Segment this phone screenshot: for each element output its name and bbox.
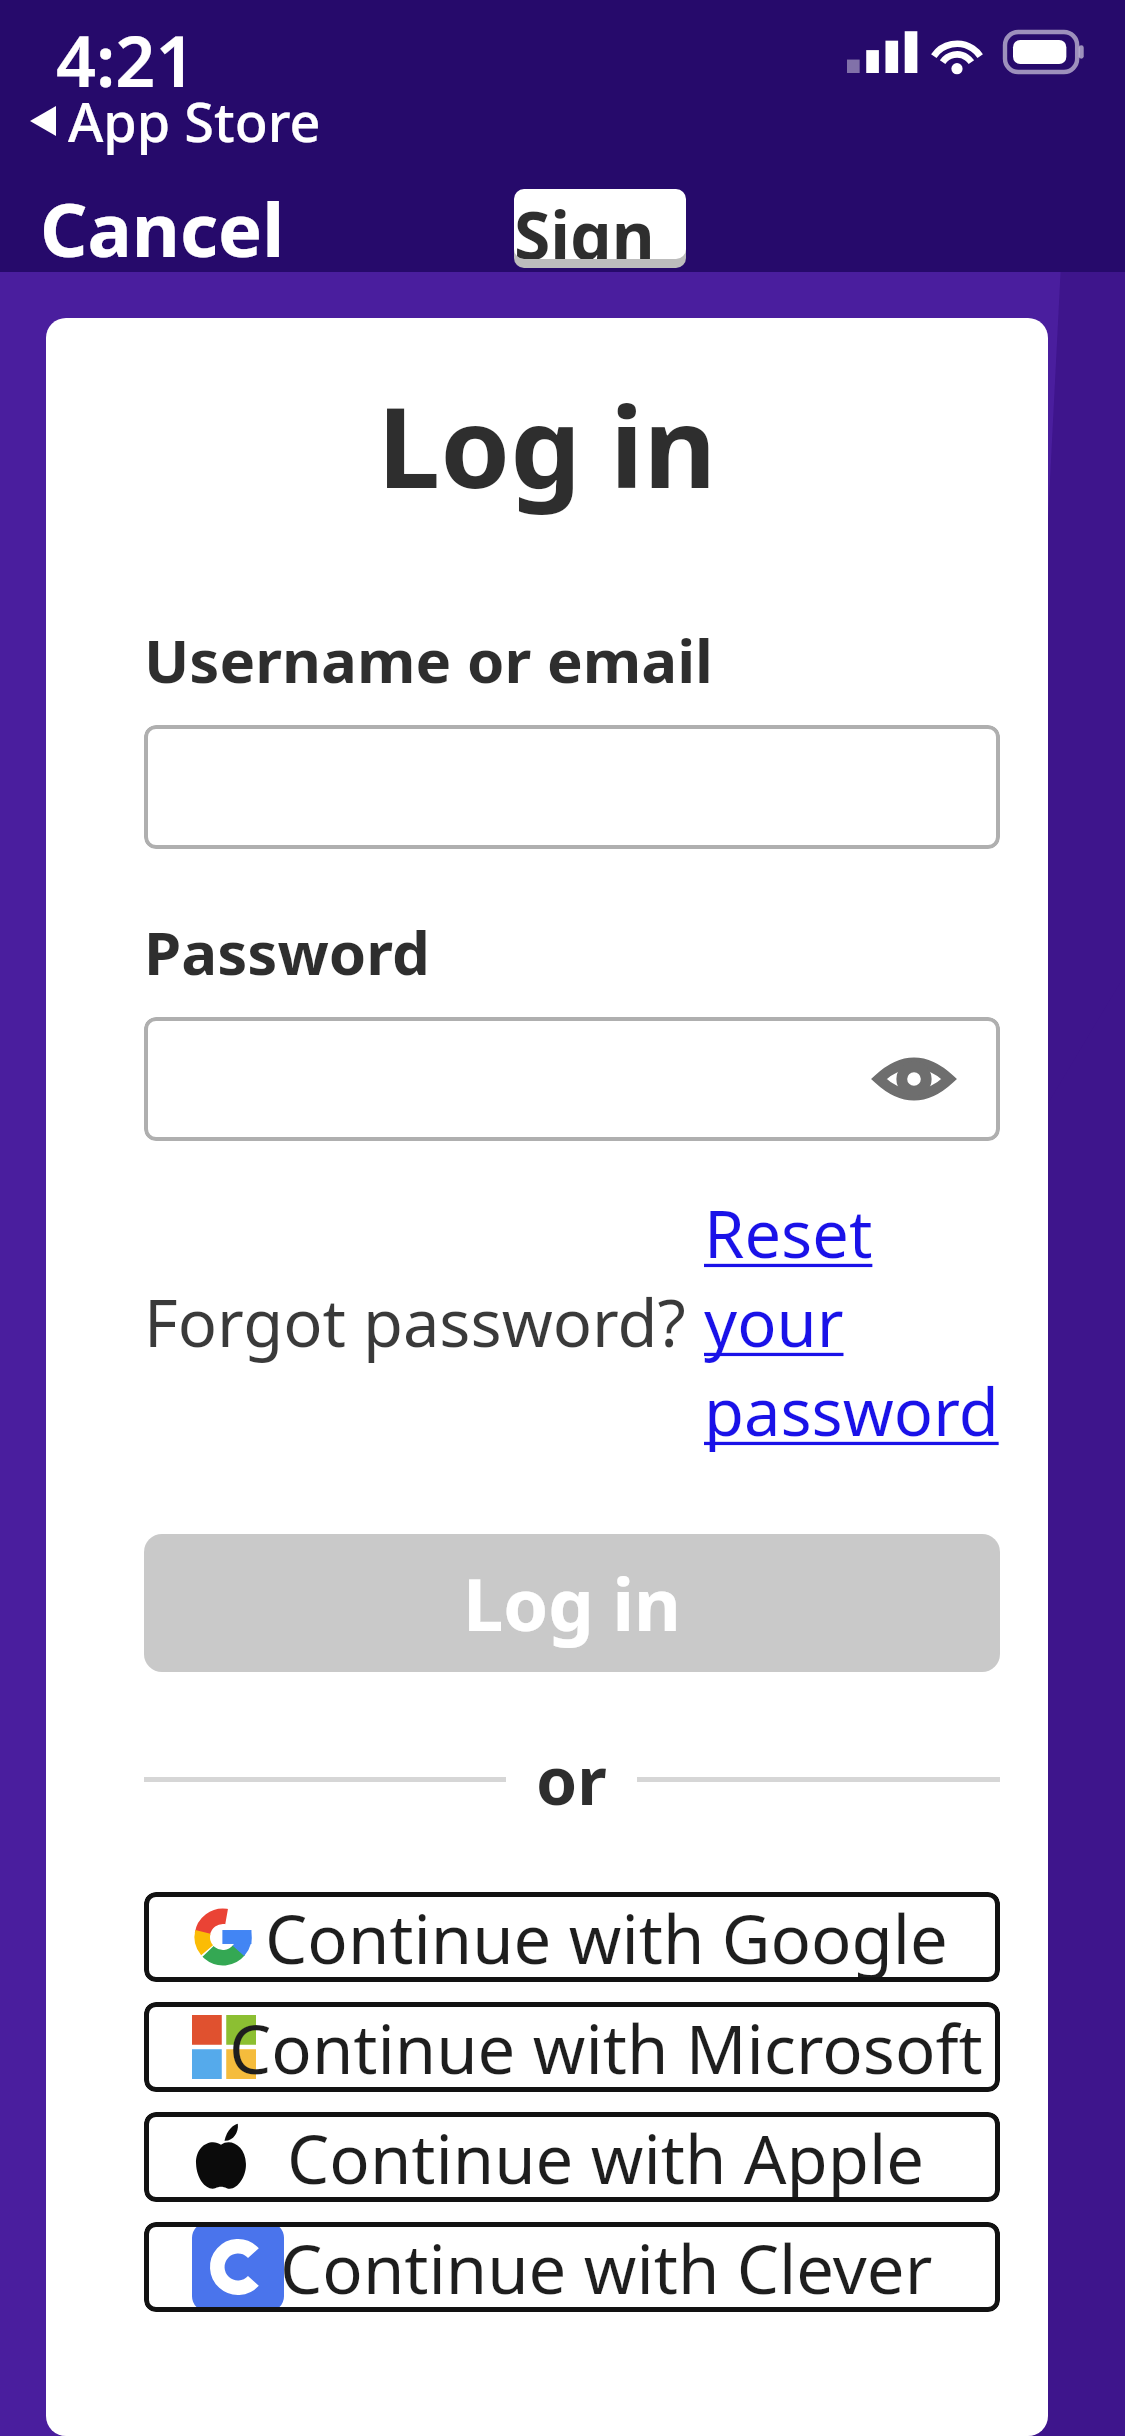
staticText: App Store bbox=[68, 84, 321, 158]
staticText: Continue with Google bbox=[265, 1892, 948, 1982]
staticText: Password bbox=[144, 911, 430, 993]
button[interactable]: Show password bbox=[866, 1031, 962, 1127]
staticText: Continue with Clever bbox=[280, 2222, 933, 2312]
button[interactable]: Log in bbox=[144, 1534, 1000, 1672]
button[interactable]: Show password bbox=[144, 1017, 1000, 1141]
button[interactable]: Reset your password bbox=[704, 1189, 1000, 1456]
staticText: 4:21 bbox=[56, 12, 196, 107]
button[interactable]: Continue with Clever bbox=[144, 2222, 1000, 2312]
staticText: Sign up bbox=[514, 189, 686, 259]
staticText: or bbox=[536, 1734, 607, 1824]
button[interactable]: Cancel bbox=[24, 164, 301, 293]
staticText: Continue with Microsoft bbox=[229, 2002, 983, 2092]
staticText: Forgot password? bbox=[144, 1278, 686, 1367]
button[interactable]: Continue with Apple bbox=[144, 2112, 1000, 2202]
staticText: Log in bbox=[144, 368, 950, 521]
staticText: Log in bbox=[463, 1554, 681, 1652]
button[interactable]: Continue with Microsoft bbox=[144, 2002, 1000, 2092]
button[interactable]: Continue with Google bbox=[144, 1892, 1000, 1982]
staticText: Continue with Apple bbox=[287, 2112, 925, 2202]
button[interactable]: App Store bbox=[20, 78, 331, 164]
button[interactable]: Sign up bbox=[514, 189, 686, 259]
button[interactable] bbox=[144, 725, 1000, 849]
staticText: Username or email bbox=[144, 619, 713, 701]
